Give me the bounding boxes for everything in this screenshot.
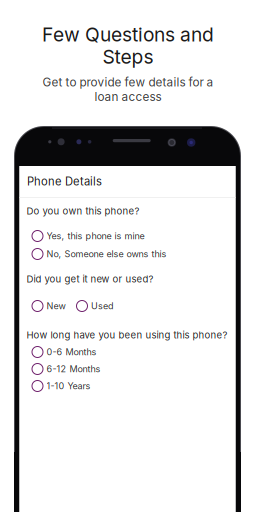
staticText: Yes, this phone is mine xyxy=(46,230,144,241)
staticText: Few Questions and xyxy=(42,23,214,46)
button[interactable]: 6-12 Months xyxy=(32,362,248,376)
button[interactable]: Used xyxy=(76,299,114,313)
staticText: loan access xyxy=(94,90,161,104)
button[interactable]: New xyxy=(32,299,65,313)
staticText: Did you get it new or used? xyxy=(26,273,153,285)
button[interactable]: Yes, this phone is mine xyxy=(32,229,248,243)
staticText: 6-12 Months xyxy=(46,363,100,374)
staticText: Used xyxy=(91,300,114,311)
staticText: Get to provide few details for a xyxy=(42,75,213,89)
staticText: 0-6 Months xyxy=(46,346,96,357)
staticText: Phone Details xyxy=(27,175,102,188)
staticText: How long have you been using this phone? xyxy=(26,329,227,341)
staticText: Do you own this phone? xyxy=(26,205,139,217)
button[interactable]: 0-6 Months xyxy=(32,345,248,359)
staticText: 1-10 Years xyxy=(46,380,90,391)
button[interactable]: No, Someone else owns this xyxy=(32,247,248,261)
staticText: New xyxy=(46,300,65,311)
button[interactable]: 1-10 Years xyxy=(32,379,248,393)
staticText: Steps xyxy=(102,45,153,68)
staticText: No, Someone else owns this xyxy=(46,248,166,259)
